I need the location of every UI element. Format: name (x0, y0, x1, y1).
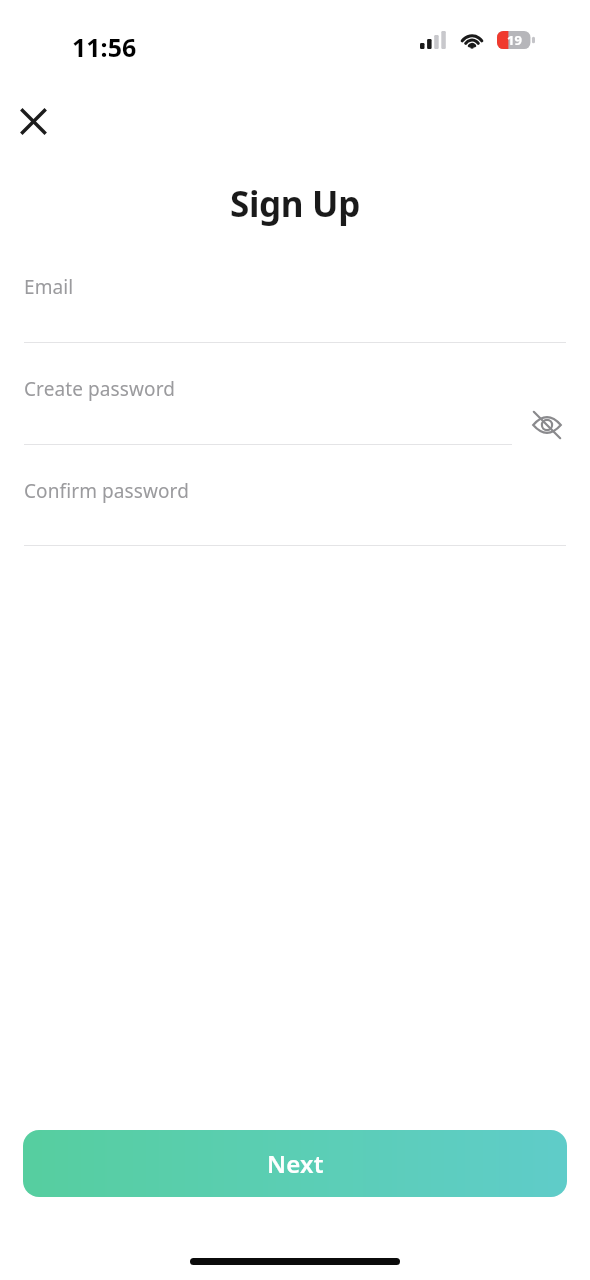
staticText: Sign Up (0, 180, 590, 228)
staticText: 19 (507, 31, 522, 49)
button[interactable]: Next (23, 1130, 567, 1197)
button[interactable]: Show password (524, 402, 570, 448)
staticText: Create password (24, 376, 175, 402)
staticText: Next (267, 1147, 324, 1180)
staticText: 11:56 (72, 30, 137, 64)
staticText: Confirm password (24, 478, 189, 504)
staticText: Email (24, 274, 74, 300)
button[interactable]: Close (12, 100, 54, 142)
